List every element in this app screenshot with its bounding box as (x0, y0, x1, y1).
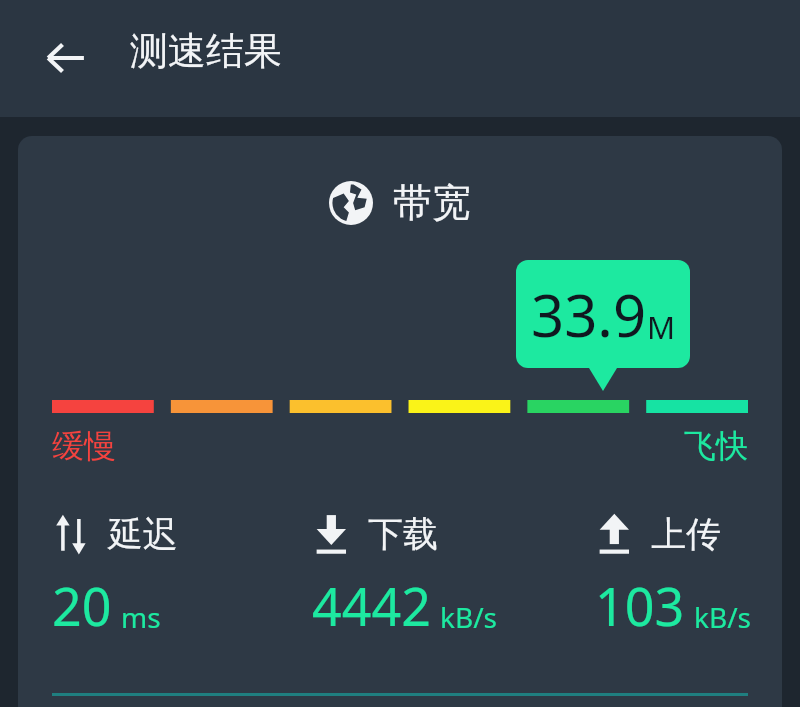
staticText: 20 (52, 570, 112, 641)
staticText: 延迟 (108, 512, 178, 556)
staticText: 飞快 (684, 426, 748, 466)
button[interactable]: 上传 (595, 512, 751, 641)
staticText: kB/s (694, 598, 751, 636)
staticText: 带宽 (393, 178, 471, 227)
staticText: 下载 (368, 512, 438, 556)
staticText: 103 (595, 570, 685, 641)
staticText: M (647, 306, 676, 348)
staticText: 33.9 (531, 275, 647, 354)
staticText: ms (121, 598, 161, 636)
staticText: kB/s (440, 598, 497, 636)
staticText: 4442 (312, 570, 431, 641)
button[interactable]: 延迟 (52, 512, 178, 641)
staticText: 上传 (651, 512, 721, 556)
button[interactable]: 下载 (312, 512, 497, 641)
staticText: 测速结果 (130, 27, 282, 75)
staticText: 缓慢 (52, 426, 116, 466)
button[interactable]: Back (38, 31, 92, 85)
